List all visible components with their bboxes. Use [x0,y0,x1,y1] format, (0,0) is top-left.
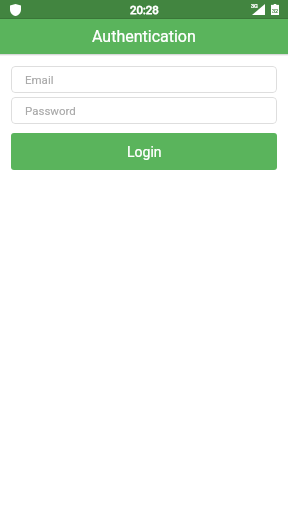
staticText: Email [25,73,54,86]
button[interactable]: Login [11,133,277,170]
staticText: Authentication [92,27,196,46]
other: Mobile signal 3G [252,4,265,15]
staticText: 3G [251,3,258,9]
staticText: Password [25,104,76,117]
other: Secure connection [10,4,21,16]
staticText: 32 [272,8,279,14]
staticText: 20:28 [130,3,159,16]
other: Battery 32 percent [271,4,279,15]
staticText: Login [127,144,162,160]
button[interactable]: Email [11,66,277,93]
button[interactable]: Password [11,97,277,124]
